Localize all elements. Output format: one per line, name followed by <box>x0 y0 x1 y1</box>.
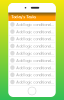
button[interactable]: Add logic conditional too <box>8 21 56 28</box>
button[interactable]: Add logic conditional too <box>8 28 56 35</box>
button[interactable]: Add logic conditional too <box>8 50 56 57</box>
staticText: Add logic conditional too <box>16 50 54 56</box>
button[interactable]: Add logic conditional too <box>8 35 56 43</box>
staticText: Add logic conditional too <box>16 72 54 77</box>
staticText: Add logic conditional too <box>16 36 54 41</box>
button[interactable]: Add logic conditional too <box>8 71 56 79</box>
staticText: Add logic conditional too <box>16 29 54 34</box>
button[interactable]: Add logic conditional too <box>8 57 56 64</box>
staticText: Add logic conditional too <box>16 65 54 70</box>
staticText: Add logic conditional too <box>16 22 54 27</box>
staticText: Add logic conditional too <box>16 79 54 85</box>
button[interactable]: Add logic conditional too <box>8 43 56 50</box>
button[interactable]: Home <box>28 87 36 97</box>
button[interactable]: Add logic conditional too <box>8 79 56 86</box>
button[interactable]: Add logic conditional too <box>8 64 56 71</box>
staticText: Add logic conditional too <box>16 43 54 49</box>
staticText: Add logic conditional too <box>16 58 54 63</box>
staticText: Today's Tasks <box>11 14 36 19</box>
